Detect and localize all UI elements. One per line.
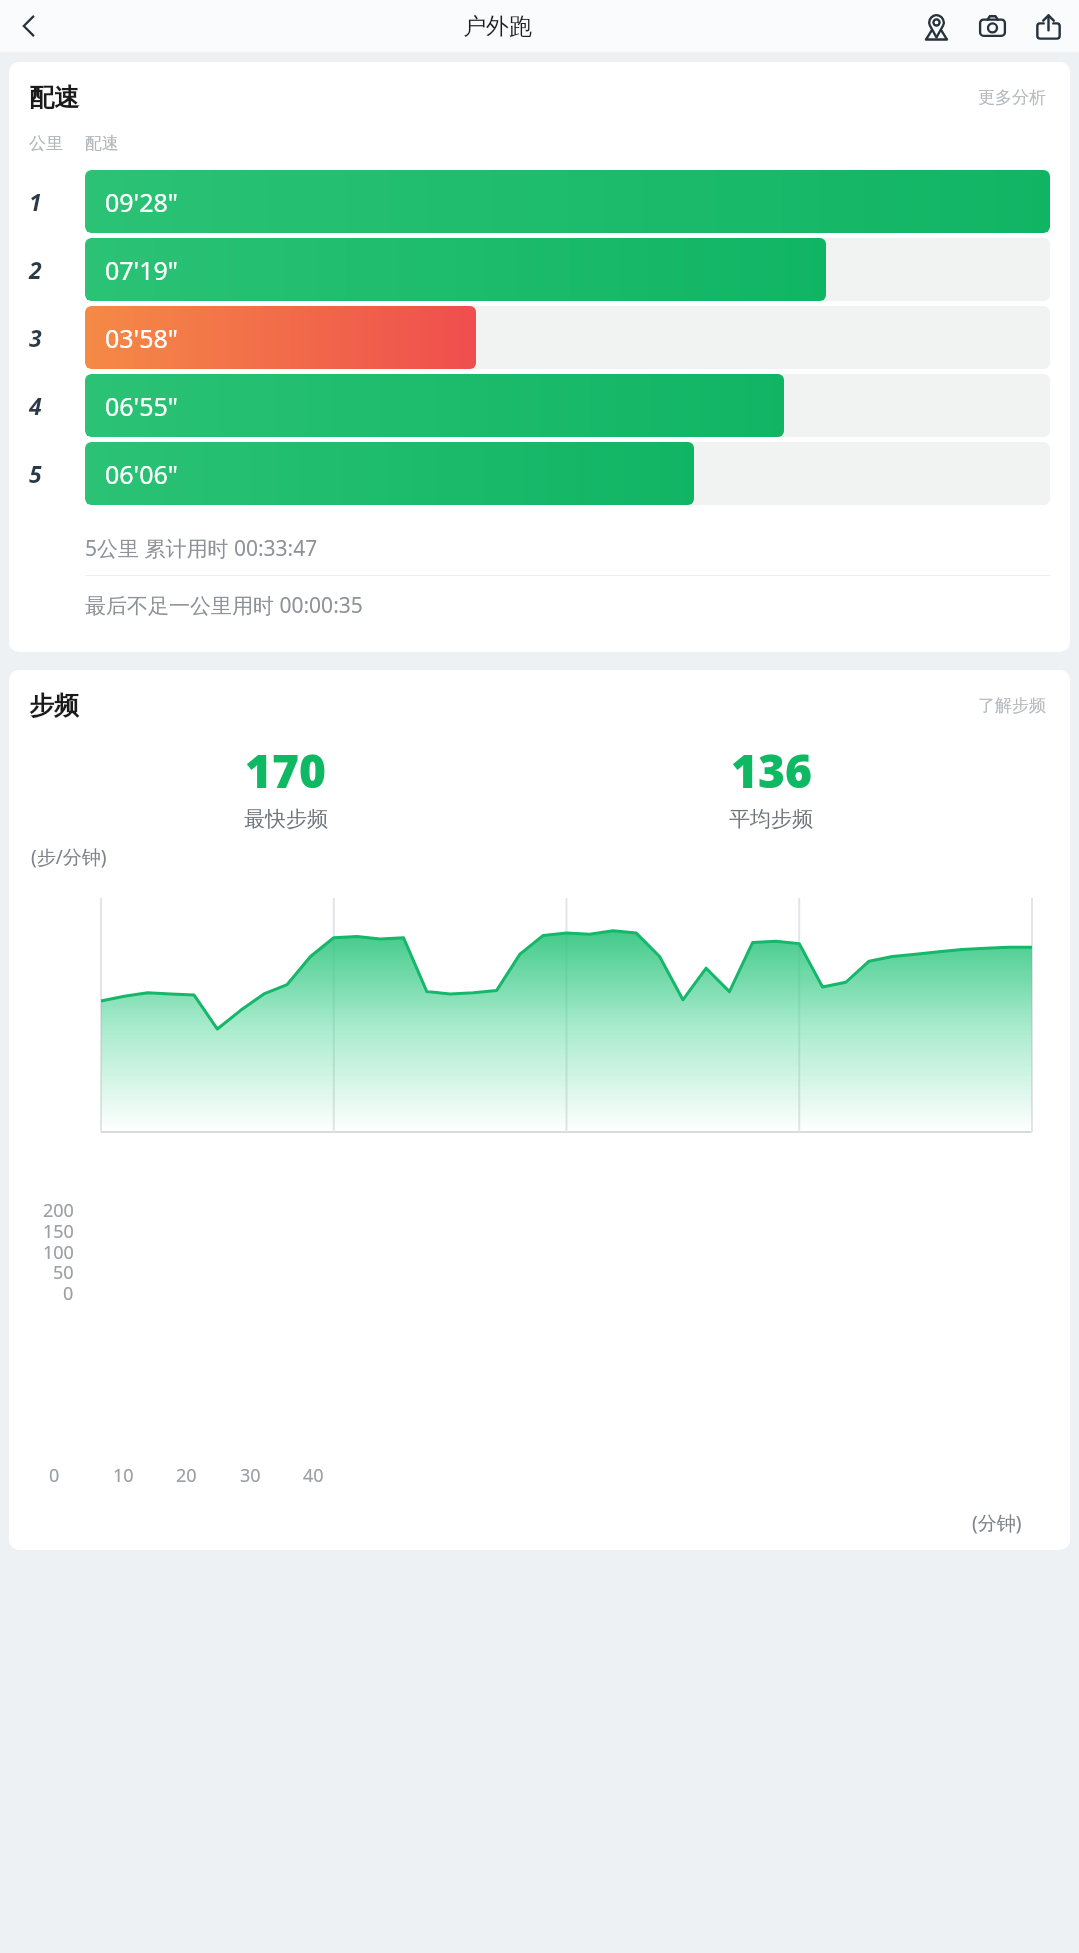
staticText: 最快步频 <box>244 806 328 832</box>
staticText: 50 <box>53 1260 74 1285</box>
button[interactable]: Camera <box>969 3 1015 49</box>
staticText: 07'19" <box>105 253 179 287</box>
staticText: 3 <box>29 322 42 353</box>
staticText: 200 <box>43 1198 74 1223</box>
staticText: 5公里 累计用时 00:33:47 <box>85 534 318 563</box>
staticText: 配速 <box>29 82 79 113</box>
staticText: 5 <box>29 458 42 489</box>
button[interactable]: Share <box>1025 3 1071 49</box>
staticText: 1 <box>29 186 42 217</box>
button[interactable]: Location <box>913 3 959 49</box>
staticText: 09'28" <box>105 185 179 219</box>
staticText: 步频 <box>29 690 79 721</box>
button[interactable]: 更多分析 <box>974 83 1050 112</box>
staticText: 户外跑 <box>463 12 532 41</box>
staticText: 平均步频 <box>729 806 813 832</box>
staticText: 20 <box>176 1463 197 1488</box>
staticText: 06'06" <box>105 457 179 491</box>
staticText: 公里 <box>29 133 63 154</box>
staticText: 4 <box>29 390 42 421</box>
staticText: 136 <box>731 739 812 802</box>
staticText: 配速 <box>85 133 119 154</box>
button[interactable]: 配速 <box>9 62 1070 652</box>
staticText: 更多分析 <box>978 87 1046 108</box>
staticText: 0 <box>63 1281 74 1306</box>
staticText: 170 <box>245 739 326 802</box>
staticText: 100 <box>43 1240 74 1265</box>
staticText: (步/分钟) <box>31 844 107 870</box>
button[interactable]: 步频 <box>9 670 1070 1550</box>
staticText: 0 <box>49 1463 60 1488</box>
staticText: (分钟) <box>972 1510 1022 1536</box>
staticText: 了解步频 <box>978 695 1046 716</box>
staticText: 06'55" <box>105 389 179 423</box>
staticText: 2 <box>29 254 42 285</box>
staticText: 10 <box>113 1463 134 1488</box>
button[interactable]: Back <box>6 3 52 49</box>
staticText: 30 <box>240 1463 261 1488</box>
staticText: 03'58" <box>105 321 179 355</box>
staticText: 40 <box>303 1463 324 1488</box>
button[interactable]: 了解步频 <box>974 691 1050 720</box>
staticText: 150 <box>43 1219 74 1244</box>
staticText: 最后不足一公里用时 00:00:35 <box>85 591 363 620</box>
